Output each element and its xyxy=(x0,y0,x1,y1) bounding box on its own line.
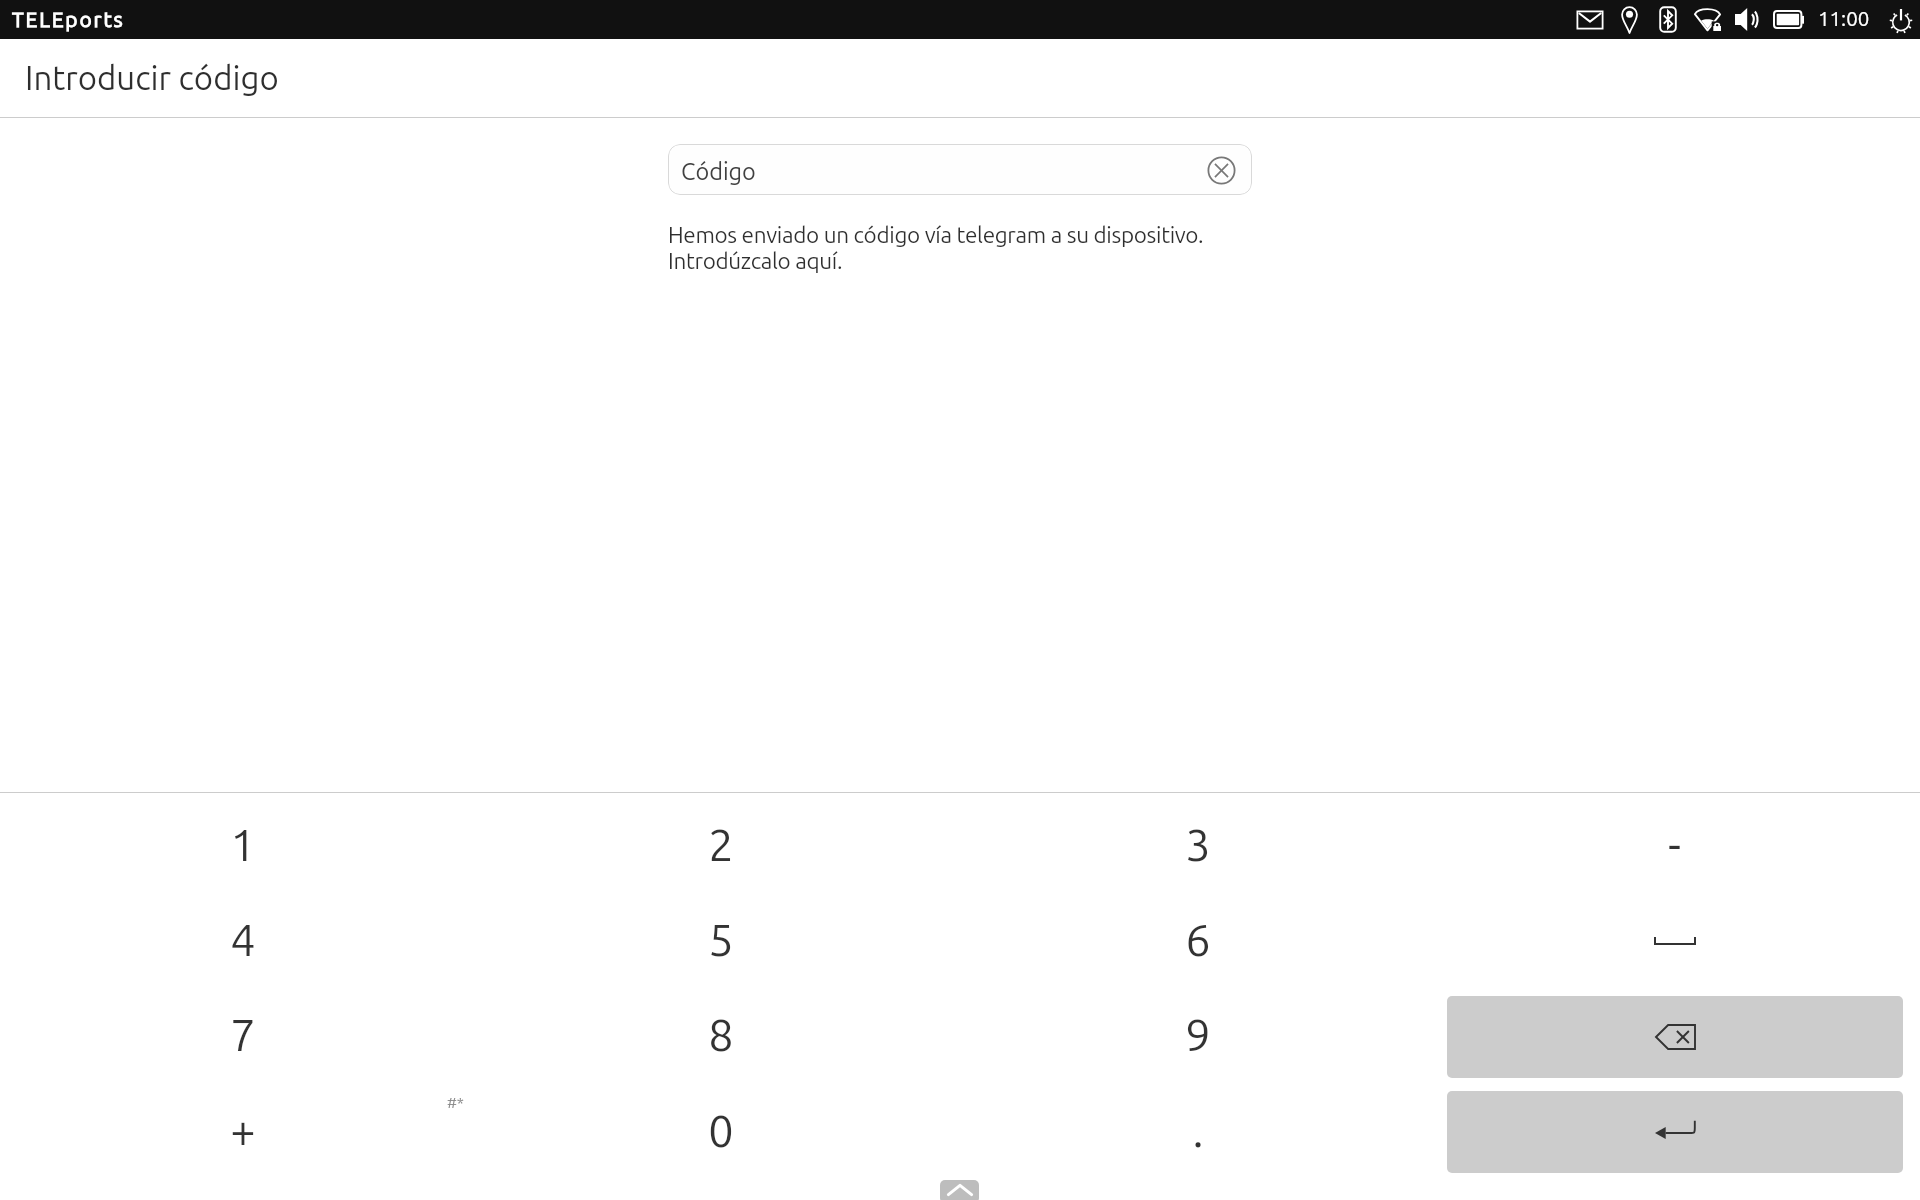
staticText: 4 xyxy=(230,914,256,964)
button[interactable]: . xyxy=(959,1082,1436,1177)
button[interactable]: Battery xyxy=(1773,10,1804,29)
button[interactable]: Código xyxy=(668,144,1252,195)
staticText: Introducir código xyxy=(25,59,279,96)
button[interactable]: Volume xyxy=(1735,8,1758,31)
staticText: 9 xyxy=(1185,1009,1211,1059)
button[interactable]: Messages xyxy=(1576,10,1604,30)
button[interactable]: Bluetooth xyxy=(1659,6,1677,33)
button[interactable]: Backspace xyxy=(1447,996,1903,1078)
button[interactable]: Location xyxy=(1621,6,1638,34)
button[interactable]: 4 xyxy=(4,891,481,986)
staticText: 8 xyxy=(708,1009,734,1059)
staticText: 11:00 xyxy=(1818,7,1870,30)
staticText: 1 xyxy=(230,819,256,869)
button[interactable]: Power xyxy=(1889,6,1913,34)
button[interactable]: Clear xyxy=(1206,155,1236,185)
button[interactable]: 1 xyxy=(4,796,481,891)
button[interactable]: Wi-Fi xyxy=(1694,8,1721,31)
staticText: + xyxy=(230,1105,256,1155)
button[interactable]: 2 xyxy=(482,796,959,891)
button[interactable]: 5 xyxy=(482,891,959,986)
button[interactable]: Enter xyxy=(1447,1091,1903,1173)
button[interactable]: 7 xyxy=(4,986,481,1081)
button[interactable]: Hide keyboard xyxy=(940,1180,979,1200)
staticText: TELEports xyxy=(12,7,125,31)
staticText: 7 xyxy=(230,1009,256,1059)
button[interactable]: + xyxy=(4,1082,481,1177)
button[interactable]: 8 xyxy=(482,986,959,1081)
button[interactable]: 9 xyxy=(959,986,1436,1081)
button[interactable]: 0 xyxy=(482,1082,959,1177)
button[interactable]: 3 xyxy=(959,796,1436,891)
staticText: 5 xyxy=(708,914,734,964)
staticText: . xyxy=(1192,1105,1204,1155)
staticText: 0 xyxy=(708,1105,734,1155)
staticText: 6 xyxy=(1185,914,1211,964)
button[interactable]: - xyxy=(1436,796,1913,891)
staticText: Código xyxy=(681,158,756,184)
button[interactable]: Space xyxy=(1436,891,1913,986)
staticText: 2 xyxy=(708,819,734,869)
staticText: - xyxy=(1668,819,1682,869)
button[interactable]: 6 xyxy=(959,891,1436,986)
staticText: Hemos enviado un código vía telegram a s… xyxy=(668,222,1204,273)
staticText: #* xyxy=(447,1094,464,1111)
staticText: 3 xyxy=(1185,819,1211,869)
